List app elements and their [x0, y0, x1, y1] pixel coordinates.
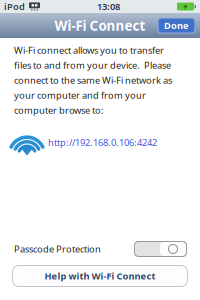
button[interactable]: http://192.168.0.106:4242 [48, 136, 157, 149]
staticText: 13:08 [97, 0, 120, 13]
staticText: Wi-Fi connect allows you to transfer fil… [14, 44, 172, 116]
button[interactable]: Passcode Protection [134, 241, 187, 257]
button[interactable]: Done [158, 18, 195, 33]
staticText: Passcode Protection [14, 243, 101, 255]
button[interactable]: Help with Wi-Fi Connect [12, 265, 188, 287]
staticText: http://192.168.0.106:4242 [48, 136, 157, 149]
staticText: Wi-Fi Connect [54, 17, 145, 34]
staticText: Help with Wi-Fi Connect [44, 270, 155, 282]
staticText: Done [164, 19, 189, 32]
staticText: iPod [4, 0, 25, 13]
